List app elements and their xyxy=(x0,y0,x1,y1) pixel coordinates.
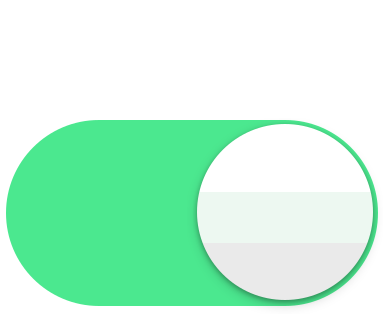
button[interactable]: Toggle, on xyxy=(6,120,378,306)
